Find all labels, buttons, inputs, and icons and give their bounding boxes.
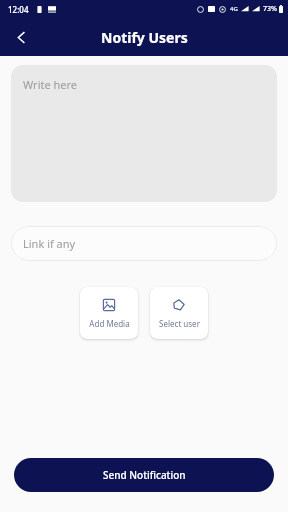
staticText: Select user (159, 318, 200, 329)
staticText: Write here (23, 77, 78, 92)
staticText: 4G (230, 5, 238, 13)
staticText: Send Notification (103, 468, 186, 482)
button[interactable]: Add Media (80, 287, 138, 339)
button[interactable]: Write here (11, 65, 277, 202)
staticText: 73% (263, 4, 277, 14)
staticText: Link if any (23, 236, 76, 251)
staticText: 12:04 (8, 4, 29, 15)
staticText: Notify Users (101, 28, 188, 47)
staticText: Add Media (89, 318, 130, 329)
button[interactable]: Link if any (11, 226, 277, 261)
button[interactable]: Send Notification (14, 458, 274, 492)
button[interactable]: Select user (150, 287, 208, 339)
button[interactable]: Back (6, 22, 36, 52)
